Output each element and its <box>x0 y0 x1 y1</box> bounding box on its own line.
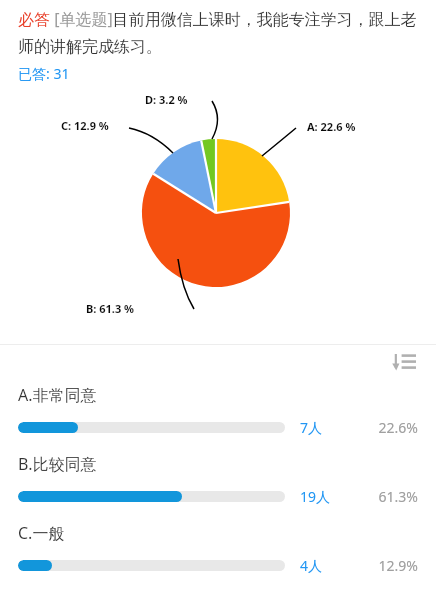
staticText: 61.3% <box>345 487 418 506</box>
staticText: A: 22.6 % <box>307 119 356 134</box>
button[interactable]: C.一般 <box>0 516 436 585</box>
staticText: 已答: 31 <box>18 64 70 83</box>
staticText: C.一般 <box>18 522 65 544</box>
staticText: 4人 <box>300 556 323 575</box>
staticText: A.非常同意 <box>18 384 97 406</box>
staticText: B: 61.3 % <box>86 301 135 316</box>
staticText: C: 12.9 % <box>61 118 109 133</box>
staticText: D: 3.2 % <box>145 92 188 107</box>
staticText: 19人 <box>300 487 331 506</box>
button[interactable]: A.非常同意 <box>0 378 436 447</box>
staticText: 22.6% <box>345 418 418 437</box>
staticText: B.比较同意 <box>18 453 97 475</box>
staticText: 必答 [单选题]目前用微信上课时，我能专注学习，跟上老师的讲解完成练习。 <box>18 8 420 57</box>
button[interactable]: B.比较同意 <box>0 447 436 516</box>
staticText: 7人 <box>300 418 323 437</box>
button[interactable]: Sort options <box>392 352 416 372</box>
staticText: 12.9% <box>345 556 418 575</box>
